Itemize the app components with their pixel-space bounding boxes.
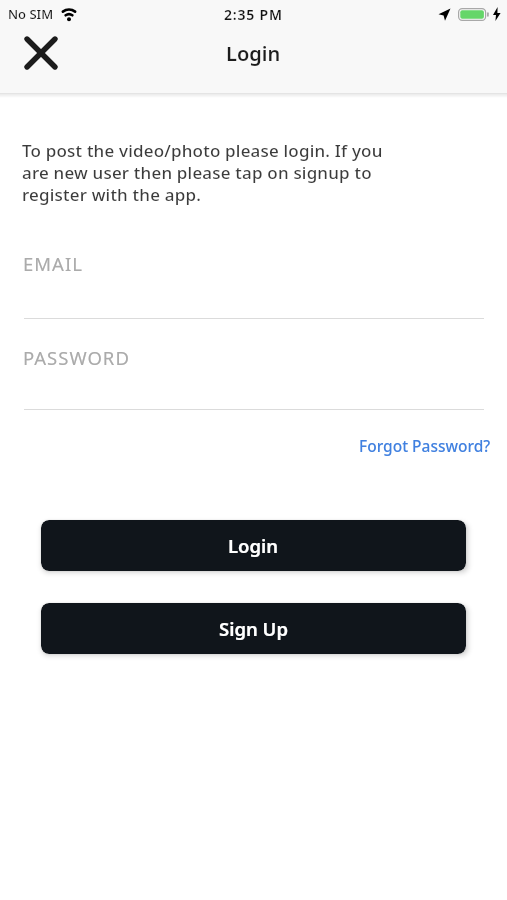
button[interactable] (17, 29, 65, 77)
staticText: Forgot Password? (359, 435, 491, 456)
staticText: Login (226, 40, 281, 67)
staticText: Sign Up (219, 616, 289, 641)
staticText: EMAIL (23, 251, 83, 276)
staticText: 2:35 PM (224, 5, 283, 24)
staticText: Login (228, 533, 279, 558)
button[interactable]: Login (41, 520, 466, 571)
button[interactable]: Sign Up (41, 603, 466, 654)
staticText: PASSWORD (23, 345, 130, 370)
button[interactable]: EMAIL (0, 251, 507, 319)
button[interactable]: PASSWORD (0, 345, 507, 410)
button[interactable]: Forgot Password? (359, 435, 491, 456)
staticText: To post the video/photo please login. If… (22, 139, 383, 206)
staticText: No SIM (8, 5, 54, 23)
